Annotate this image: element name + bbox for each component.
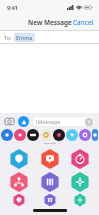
staticText: 9:41: [7, 4, 18, 11]
button[interactable]: To:: [0, 31, 99, 44]
button[interactable]: App: [40, 129, 52, 141]
button[interactable]: App Store: [18, 116, 29, 127]
staticText: New Message: [28, 18, 72, 27]
button[interactable]: App: [53, 129, 65, 141]
button[interactable]: Send: [85, 118, 93, 126]
staticText: To:: [4, 34, 12, 41]
button[interactable]: App: [1, 129, 13, 141]
button[interactable]: Sticker: [8, 148, 30, 170]
button[interactable]: Sticker: [39, 148, 61, 170]
button[interactable]: Sticker: [39, 193, 61, 207]
button[interactable]: App: [14, 129, 26, 141]
button[interactable]: Camera: [4, 116, 15, 127]
button[interactable]: App: [27, 129, 39, 141]
button[interactable]: iMessage: [32, 116, 95, 127]
button[interactable]: Sticker: [69, 171, 91, 193]
button[interactable]: Sticker: [8, 171, 30, 193]
button[interactable]: Sticker: [69, 193, 91, 207]
button[interactable]: Sticker: [8, 193, 30, 207]
button[interactable]: Cancel: [68, 15, 99, 30]
button[interactable]: App: [79, 129, 91, 141]
button[interactable]: Sticker: [39, 171, 61, 193]
staticText: iMessage: [36, 118, 61, 125]
button[interactable]: App: [92, 129, 98, 141]
staticText: Cancel: [73, 18, 94, 27]
staticText: Emma: [16, 34, 33, 41]
button[interactable]: App: [66, 129, 78, 141]
button[interactable]: Sticker: [69, 148, 91, 170]
